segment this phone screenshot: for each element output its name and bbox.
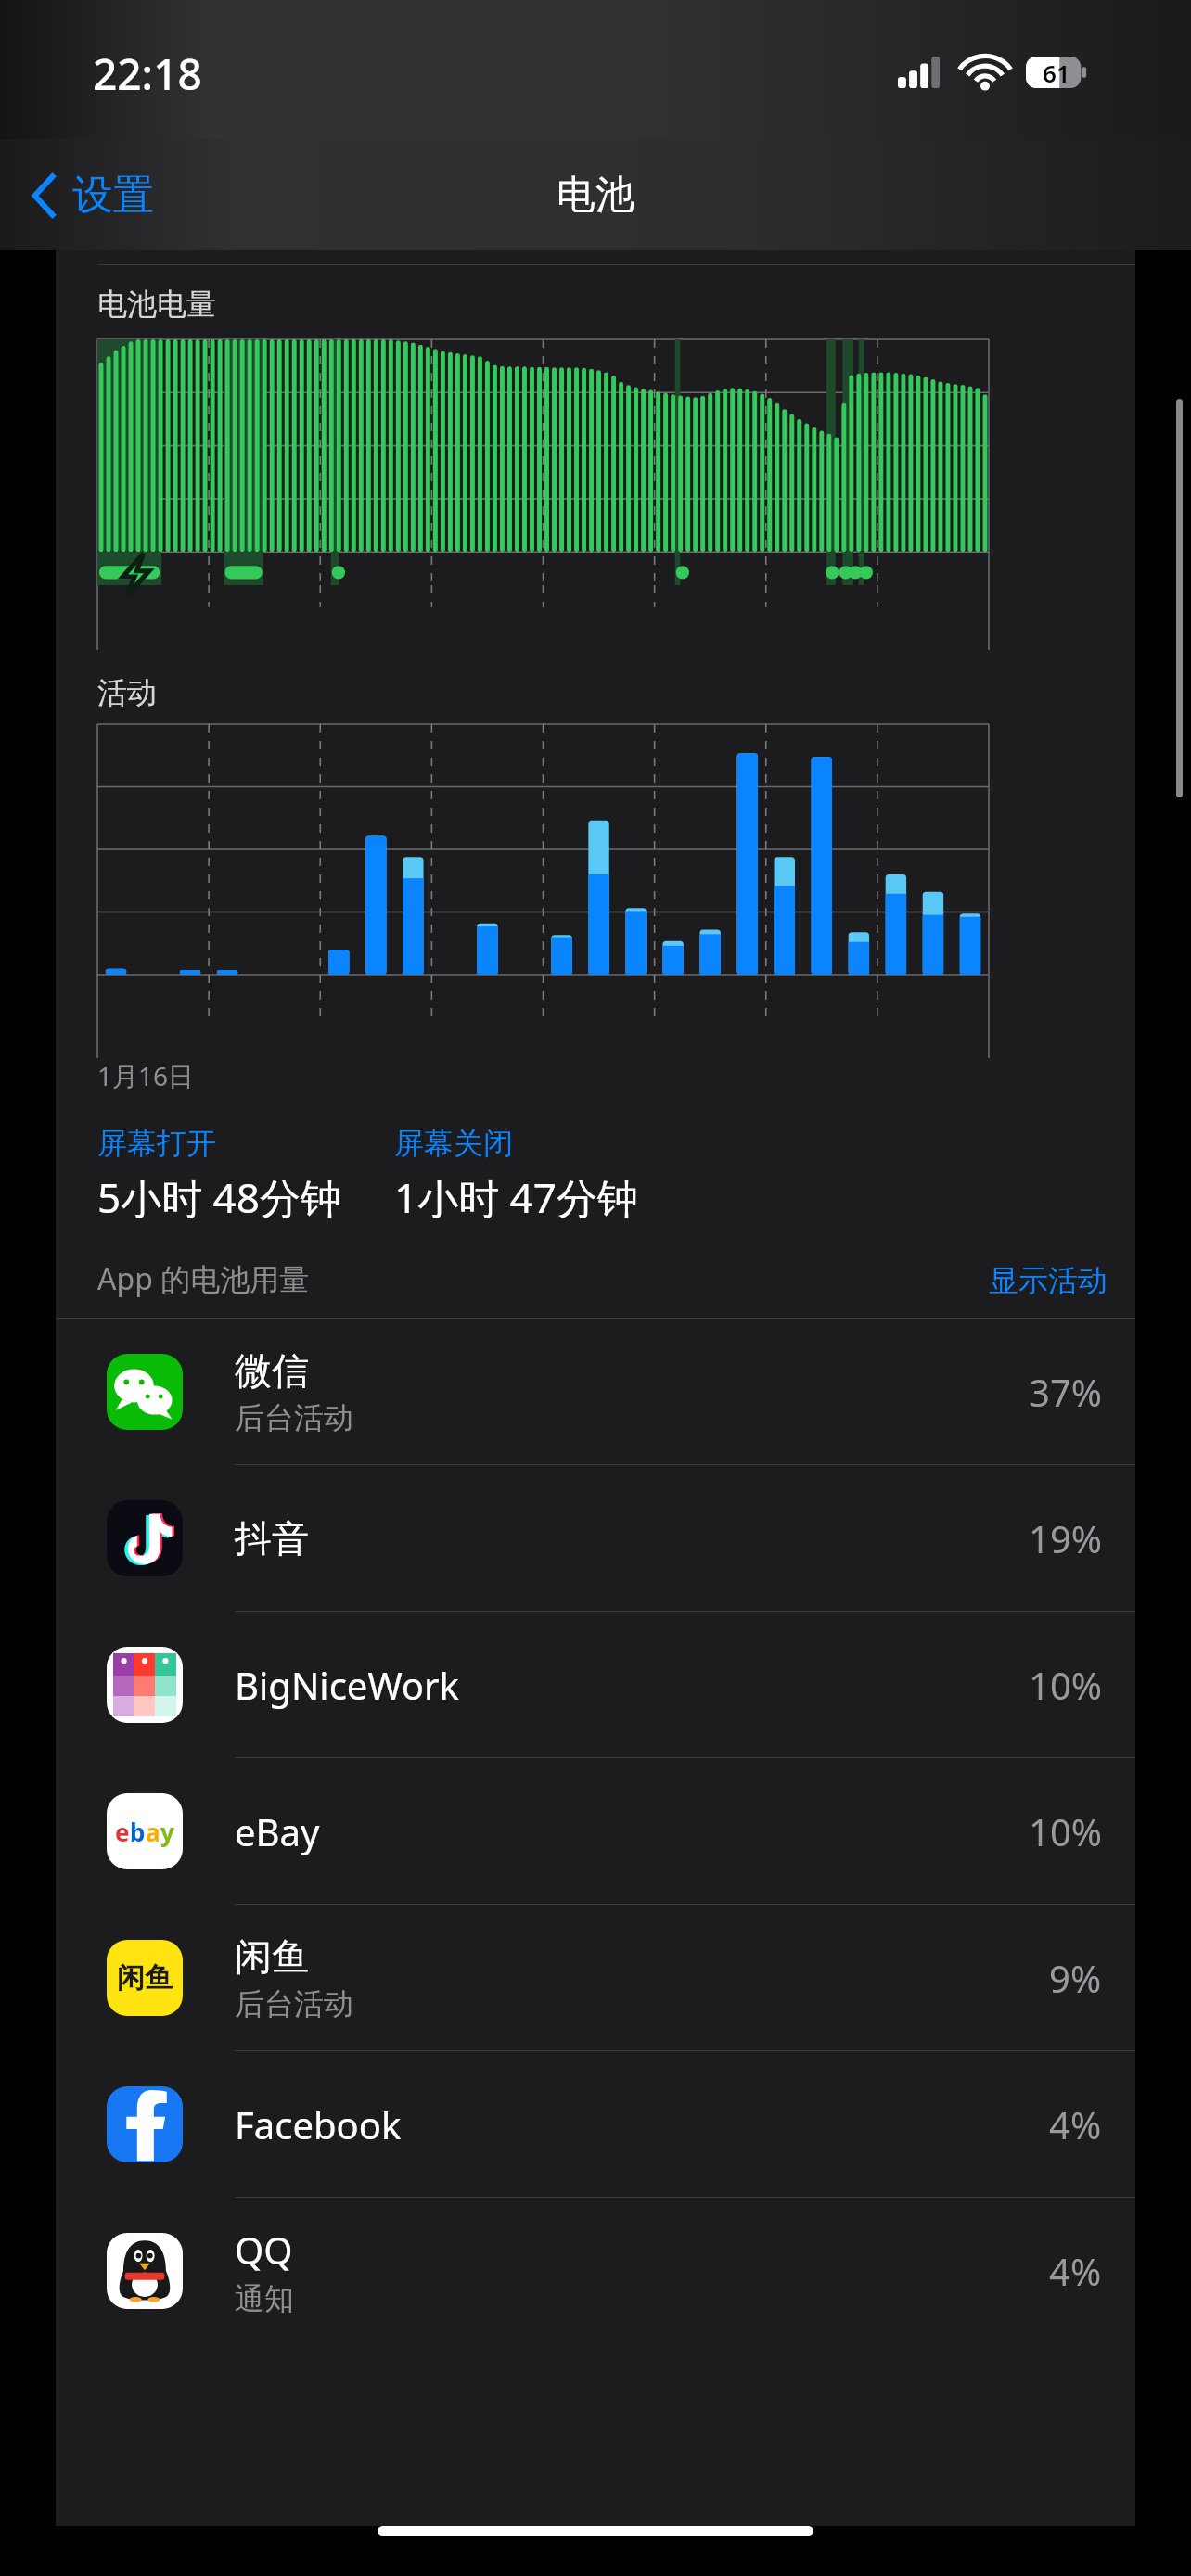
staticText: 屏幕打开	[97, 1125, 216, 1162]
staticText: a	[146, 1816, 160, 1848]
staticText: 22:18	[93, 45, 202, 103]
staticText: 微信	[235, 1347, 309, 1394]
button[interactable]: e	[56, 1758, 1135, 1904]
button[interactable]: 屏幕打开	[97, 1125, 376, 1225]
button[interactable]: 闲鱼	[56, 1905, 1135, 2050]
staticText: 4%	[1049, 2246, 1102, 2296]
staticText: BigNiceWork	[235, 1660, 459, 1710]
staticText: QQ	[235, 2225, 293, 2275]
staticText: eBay	[235, 1806, 320, 1856]
staticText: 5小时 48分钟	[97, 1169, 341, 1225]
staticText: 1小时 47分钟	[394, 1169, 638, 1225]
staticText: y	[160, 1816, 174, 1848]
button[interactable]: 设置	[32, 170, 154, 221]
staticText: b	[130, 1816, 146, 1848]
button[interactable]: BigNiceWork	[56, 1612, 1135, 1757]
staticText: 后台活动	[235, 1985, 353, 2022]
staticText: 闲鱼	[235, 1933, 309, 1980]
button[interactable]: 屏幕关闭	[394, 1125, 638, 1225]
staticText: 屏幕关闭	[394, 1125, 513, 1162]
staticText: 电池	[557, 171, 634, 220]
staticText: 19%	[1029, 1513, 1102, 1563]
staticText: 电池电量	[97, 286, 216, 323]
staticText: 10%	[1029, 1660, 1102, 1710]
staticText: 61	[1043, 57, 1070, 89]
staticText: 后台活动	[235, 1399, 353, 1436]
staticText: 闲鱼	[117, 1960, 173, 1996]
staticText: 4%	[1049, 2099, 1102, 2149]
button[interactable]: 显示活动	[989, 1262, 1108, 1299]
staticText: 9%	[1049, 1953, 1102, 2003]
staticText: 1月16日	[97, 1058, 195, 1093]
button[interactable]: 抖音	[56, 1465, 1135, 1611]
staticText: 抖音	[235, 1515, 309, 1562]
staticText: Facebook	[235, 2099, 402, 2149]
staticText: 通知	[235, 2280, 294, 2317]
staticText: e	[115, 1816, 130, 1848]
staticText: 10%	[1029, 1806, 1102, 1856]
staticText: 活动	[97, 674, 157, 711]
staticText: App 的电池用量	[97, 1258, 310, 1299]
staticText: 37%	[1029, 1367, 1102, 1417]
button[interactable]: 微信	[56, 1319, 1135, 1464]
staticText: 设置	[72, 170, 154, 221]
button[interactable]: QQ	[56, 2198, 1135, 2343]
button[interactable]: Facebook	[56, 2051, 1135, 2197]
